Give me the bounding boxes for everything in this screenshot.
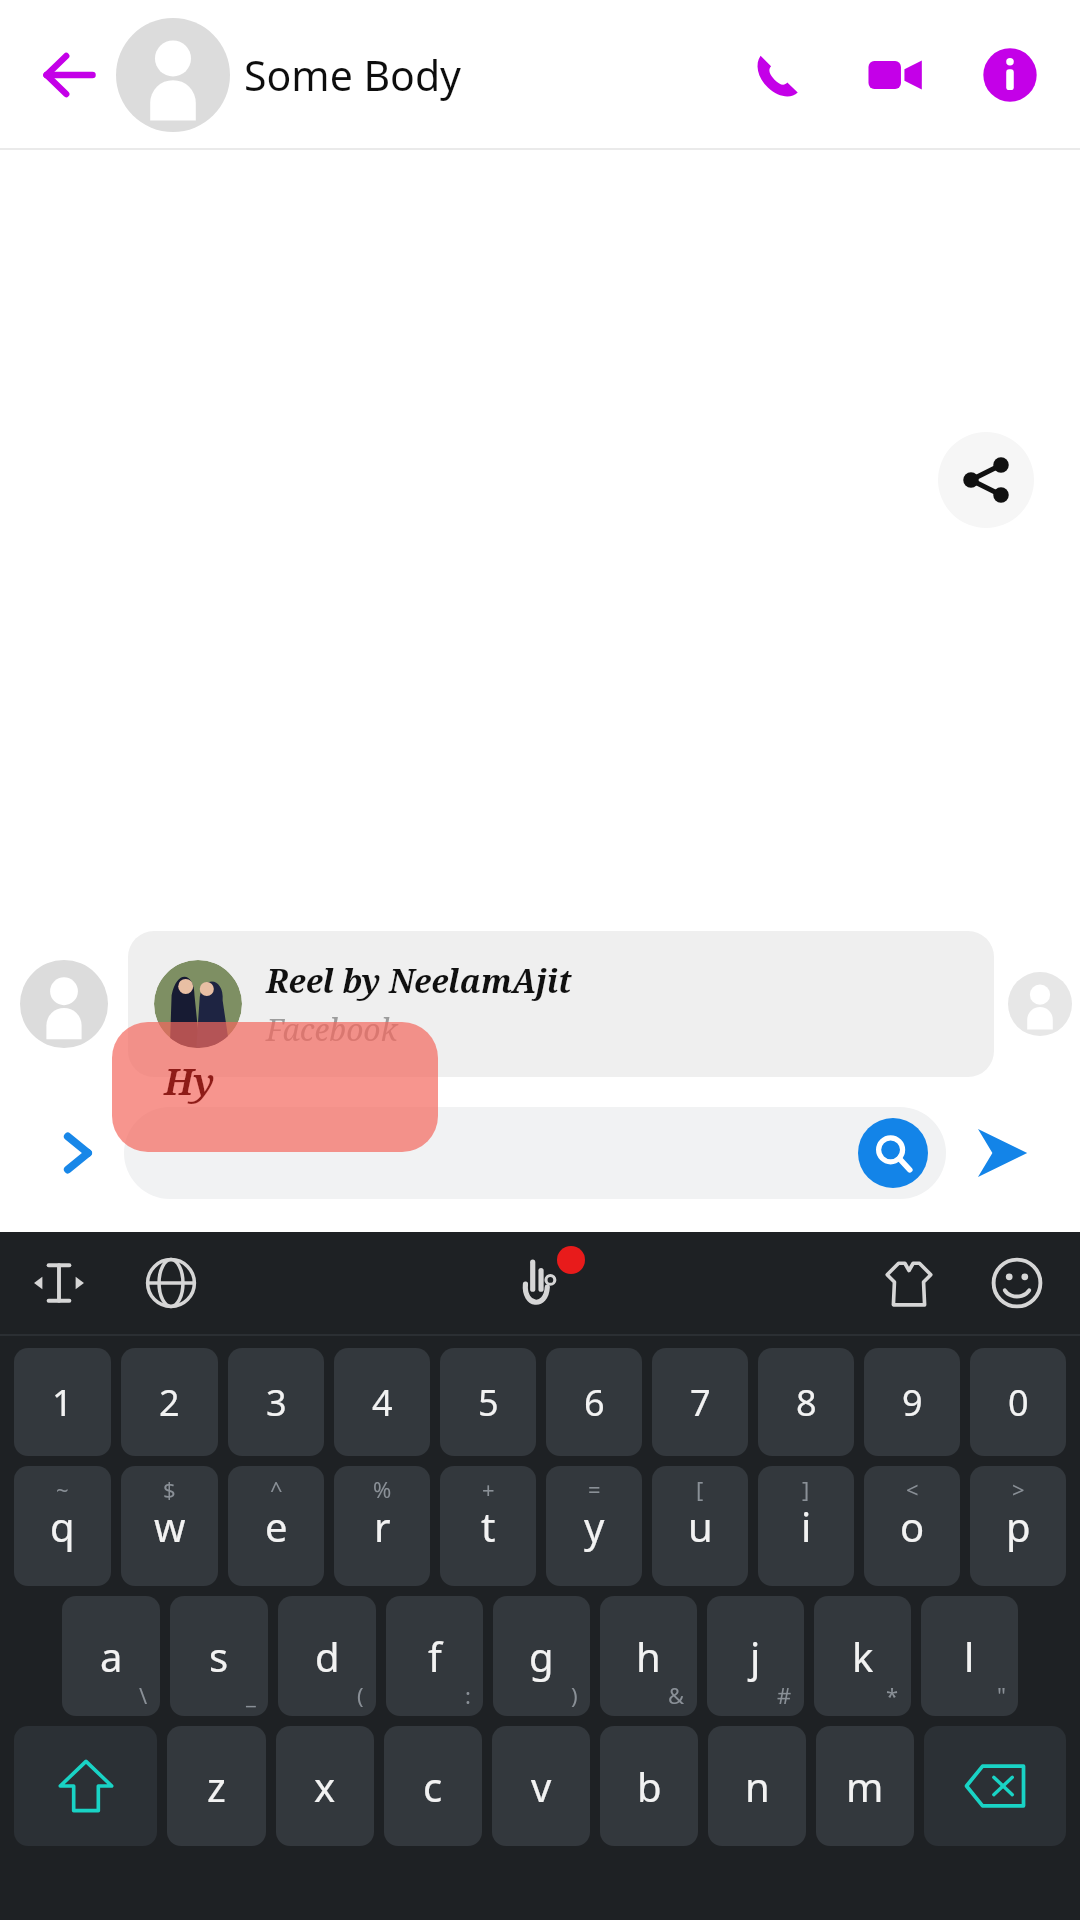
- button[interactable]: Shift: [14, 1726, 157, 1846]
- staticText: z: [207, 1759, 226, 1813]
- staticText: u: [688, 1499, 713, 1553]
- button[interactable]: =: [546, 1466, 642, 1586]
- button[interactable]: Info: [968, 33, 1052, 117]
- staticText: d: [315, 1629, 340, 1683]
- staticText: Hy: [164, 1057, 215, 1106]
- button[interactable]: Backspace: [924, 1726, 1066, 1846]
- button[interactable]: 7: [652, 1348, 748, 1456]
- button[interactable]: Send: [960, 1111, 1044, 1195]
- button[interactable]: Expand: [44, 1120, 110, 1186]
- button[interactable]: Theme: [870, 1244, 948, 1322]
- button[interactable]: Hy: [112, 1022, 438, 1152]
- button[interactable]: %: [334, 1466, 430, 1586]
- staticText: >: [1012, 1474, 1025, 1504]
- staticText: w: [154, 1499, 186, 1553]
- button[interactable]: m: [816, 1726, 914, 1846]
- staticText: 4: [372, 1378, 393, 1427]
- staticText: ): [571, 1680, 578, 1710]
- button[interactable]: Emoji: [978, 1244, 1056, 1322]
- button[interactable]: (: [278, 1596, 376, 1716]
- staticText: q: [50, 1499, 75, 1553]
- button[interactable]: n: [708, 1726, 806, 1846]
- staticText: v: [531, 1759, 552, 1813]
- staticText: g: [529, 1629, 554, 1683]
- button[interactable]: +: [440, 1466, 536, 1586]
- button[interactable]: 4: [334, 1348, 430, 1456]
- staticText: y: [584, 1499, 605, 1553]
- staticText: 0: [1008, 1378, 1029, 1427]
- button[interactable]: c: [384, 1726, 482, 1846]
- staticText: $: [163, 1474, 176, 1504]
- staticText: c: [423, 1759, 443, 1813]
- button[interactable]: Share: [938, 432, 1034, 528]
- button[interactable]: v: [492, 1726, 590, 1846]
- button[interactable]: Profile photo: [116, 18, 230, 132]
- staticText: &: [668, 1680, 685, 1710]
- button[interactable]: _: [170, 1596, 268, 1716]
- button[interactable]: b: [600, 1726, 698, 1846]
- staticText: 1: [52, 1378, 73, 1427]
- button[interactable]: Search: [124, 1107, 946, 1199]
- button[interactable]: >: [970, 1466, 1066, 1586]
- staticText: k: [852, 1629, 874, 1683]
- staticText: t: [481, 1499, 496, 1553]
- staticText: 7: [690, 1378, 711, 1427]
- button[interactable]: 1: [14, 1348, 111, 1456]
- button[interactable]: ]: [758, 1466, 854, 1586]
- staticText: 8: [796, 1378, 817, 1427]
- staticText: e: [265, 1499, 288, 1553]
- button[interactable]: #: [707, 1596, 804, 1716]
- button[interactable]: Reel by NeelamAjit: [128, 931, 994, 1077]
- staticText: i: [801, 1499, 812, 1553]
- button[interactable]: x: [276, 1726, 374, 1846]
- staticText: f: [428, 1629, 442, 1683]
- staticText: ~: [56, 1474, 69, 1504]
- staticText: b: [637, 1759, 662, 1813]
- staticText: p: [1006, 1499, 1031, 1553]
- staticText: :: [465, 1680, 471, 1710]
- button[interactable]: Cursor control: [20, 1244, 98, 1322]
- button[interactable]: [: [652, 1466, 748, 1586]
- button[interactable]: 8: [758, 1348, 854, 1456]
- staticText: 3: [266, 1378, 287, 1427]
- button[interactable]: Back: [26, 32, 112, 118]
- staticText: [: [696, 1474, 704, 1504]
- button[interactable]: Some Body: [244, 47, 736, 103]
- button[interactable]: \: [62, 1596, 160, 1716]
- staticText: ": [997, 1680, 1006, 1710]
- staticText: j: [750, 1629, 761, 1683]
- button[interactable]: ): [493, 1596, 590, 1716]
- staticText: a: [100, 1629, 123, 1683]
- button[interactable]: Video call: [852, 33, 936, 117]
- button[interactable]: <: [864, 1466, 960, 1586]
- button[interactable]: 6: [546, 1348, 642, 1456]
- staticText: %: [373, 1474, 392, 1504]
- button[interactable]: 5: [440, 1348, 536, 1456]
- button[interactable]: 9: [864, 1348, 960, 1456]
- button[interactable]: Voice call: [736, 33, 820, 117]
- button[interactable]: Search: [858, 1118, 928, 1188]
- staticText: s: [209, 1629, 229, 1683]
- button[interactable]: *: [814, 1596, 911, 1716]
- staticText: <: [906, 1474, 919, 1504]
- button[interactable]: ^: [228, 1466, 324, 1586]
- button[interactable]: &: [600, 1596, 697, 1716]
- staticText: ^: [270, 1474, 283, 1504]
- button[interactable]: ": [921, 1596, 1018, 1716]
- button[interactable]: :: [386, 1596, 483, 1716]
- staticText: l: [964, 1629, 975, 1683]
- staticText: 6: [584, 1378, 605, 1427]
- button[interactable]: $: [121, 1466, 218, 1586]
- staticText: Facebook: [266, 1009, 398, 1050]
- staticText: =: [588, 1474, 601, 1504]
- staticText: o: [900, 1499, 925, 1553]
- button[interactable]: z: [167, 1726, 266, 1846]
- button[interactable]: Gestures: [501, 1244, 579, 1322]
- staticText: h: [636, 1629, 661, 1683]
- button[interactable]: ~: [14, 1466, 111, 1586]
- button[interactable]: Language: [132, 1244, 210, 1322]
- staticText: x: [314, 1759, 336, 1813]
- button[interactable]: 2: [121, 1348, 218, 1456]
- button[interactable]: 0: [970, 1348, 1066, 1456]
- button[interactable]: 3: [228, 1348, 324, 1456]
